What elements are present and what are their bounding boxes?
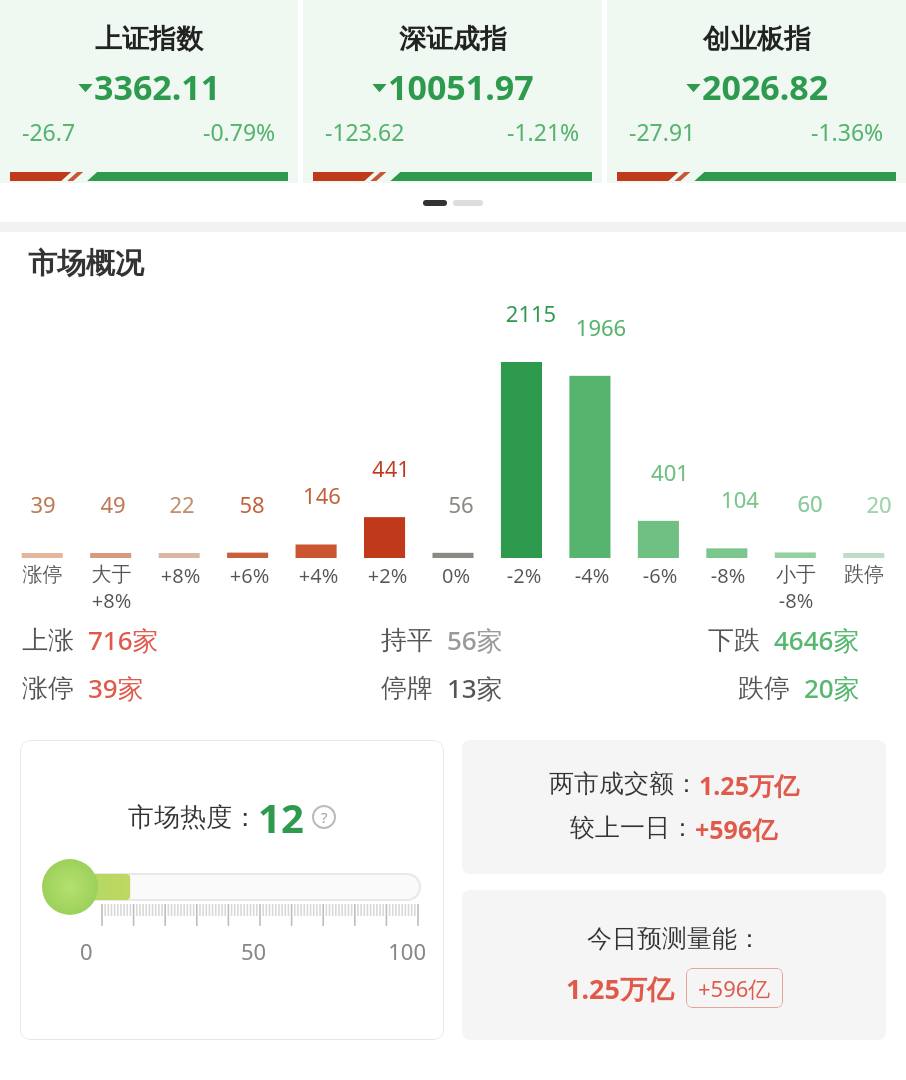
staticText: 100 xyxy=(311,936,426,966)
staticText: 小于 xyxy=(762,562,830,587)
staticText: 涨停 xyxy=(8,562,77,587)
staticText: 49 xyxy=(78,489,148,519)
staticText: 停牌 xyxy=(381,672,433,705)
button[interactable]: 创业板指 xyxy=(607,0,906,183)
staticText: ? xyxy=(321,807,328,827)
staticText: 39家 xyxy=(88,670,144,706)
staticText: 716家 xyxy=(88,622,159,658)
staticText: 20家 xyxy=(804,670,860,706)
staticText: -123.62 xyxy=(325,116,405,147)
button[interactable]: 深证成指 xyxy=(303,0,602,183)
staticText: 跌停 xyxy=(738,672,790,705)
staticText: -8% xyxy=(762,587,830,614)
staticText: 今日预测量能： xyxy=(587,923,762,954)
staticText: 12 xyxy=(258,790,304,844)
staticText: 22 xyxy=(147,489,217,519)
staticText: 3362.11 xyxy=(94,64,221,110)
button[interactable]: 上证指数 xyxy=(0,0,298,183)
staticText: +8% xyxy=(77,587,146,614)
staticText: 大于 xyxy=(77,562,146,587)
button[interactable]: 两市成交额： xyxy=(462,740,886,874)
staticText: 跌停 xyxy=(830,562,898,587)
staticText: 1.25万亿 xyxy=(566,970,674,1007)
staticText: 深证成指 xyxy=(399,22,507,56)
staticText: 持平 xyxy=(381,624,433,657)
staticText: 58 xyxy=(217,489,287,519)
staticText: 市场热度： xyxy=(128,801,258,834)
staticText: 2115 xyxy=(496,298,566,328)
staticText: -27.91 xyxy=(629,116,696,147)
staticText: -26.7 xyxy=(22,116,76,147)
staticText: 下跌 xyxy=(708,624,760,657)
staticText: 146 xyxy=(287,480,357,510)
staticText: 1.25万亿 xyxy=(699,768,799,802)
staticText: -1.21% xyxy=(507,116,580,147)
staticText: 441 xyxy=(356,453,426,483)
staticText: +596亿 xyxy=(695,812,778,846)
staticText: 两市成交额： xyxy=(549,768,699,799)
staticText: 上证指数 xyxy=(95,22,203,56)
staticText: 10051.97 xyxy=(388,64,534,110)
staticText: +6% xyxy=(215,562,284,589)
button[interactable]: 帮助 xyxy=(312,805,336,829)
staticText: 39 xyxy=(8,489,78,519)
staticText: 上涨 xyxy=(22,624,74,657)
staticText: 0 xyxy=(80,936,196,966)
staticText: +2% xyxy=(353,562,422,589)
staticText: -0.79% xyxy=(203,116,276,147)
staticText: -4% xyxy=(558,562,626,589)
staticText: -2% xyxy=(490,562,558,589)
staticText: 401 xyxy=(635,457,705,487)
staticText: -8% xyxy=(694,562,762,589)
staticText: -6% xyxy=(626,562,694,589)
staticText: +4% xyxy=(284,562,353,589)
staticText: 创业板指 xyxy=(703,22,811,56)
staticText: 2026.82 xyxy=(702,64,829,110)
staticText: 60 xyxy=(775,488,845,518)
button[interactable]: 今日预测量能： xyxy=(462,890,886,1040)
staticText: 56 xyxy=(426,489,496,519)
staticText: 50 xyxy=(196,936,311,966)
staticText: 4646家 xyxy=(774,622,860,658)
staticText: 56家 xyxy=(447,622,503,658)
staticText: +8% xyxy=(146,562,215,589)
staticText: +596亿 xyxy=(698,973,771,1003)
staticText: 涨停 xyxy=(22,672,74,705)
staticText: 市场概况 xyxy=(28,245,144,282)
staticText: 104 xyxy=(705,484,775,514)
staticText: -1.36% xyxy=(811,116,884,147)
staticText: 0% xyxy=(422,562,490,589)
button[interactable]: 市场热度： xyxy=(20,740,444,1040)
staticText: 1966 xyxy=(566,312,636,342)
staticText: 13家 xyxy=(447,670,503,706)
staticText: 20 xyxy=(844,489,906,519)
staticText: 较上一日： xyxy=(570,812,695,843)
